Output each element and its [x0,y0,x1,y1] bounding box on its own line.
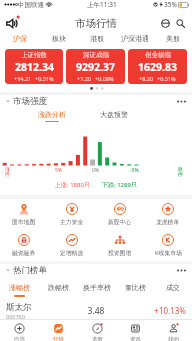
staticText: 涨幅榜 [9,283,30,292]
staticText: 斯太尔 [6,302,32,313]
staticText: 2812.34 [15,60,54,74]
staticText: 9292.37 [76,60,115,74]
staticText: 投资图谱 [108,249,132,256]
button[interactable]: 新股中心 [96,199,144,230]
button[interactable]: 深证成指 [66,49,125,84]
staticText: 跌幅榜 [48,283,69,292]
button[interactable]: 创业板指 [128,49,187,84]
button[interactable]: 换手率榜 [78,277,116,301]
staticText: 000760 [6,313,25,320]
button[interactable]: 美股 [154,33,192,46]
button[interactable]: 投资图谱 [96,230,144,261]
staticText: +0.08% [95,75,114,82]
staticText: 主力资金 [60,218,84,225]
button[interactable]: 成交 [154,277,192,301]
staticText: +0.51% [157,75,176,82]
staticText: 涨跌分析 [38,110,66,119]
staticText: 选股 [92,336,103,341]
button[interactable]: 自选 [0,320,39,341]
staticText: 沪深 [13,34,27,43]
staticText: 港股 [90,34,104,43]
staticText: 市场强度 [13,96,47,107]
staticText: 深证成指 [83,51,109,59]
staticText: 1629.83 [138,60,177,74]
staticText: 跌 停 [178,166,183,178]
staticText: 下跌: 1289只 [102,181,137,189]
button[interactable]: 融资融券 [0,230,48,261]
staticText: 美股 [166,34,180,43]
staticText: +0.51% [35,75,54,82]
staticText: 0% [92,167,100,174]
button[interactable]: 沪深港通 [116,33,154,46]
staticText: 定增精选 [60,249,84,256]
staticText: +10.13% [126,305,186,316]
staticText: 沪深港通 [121,34,149,43]
staticText: 量比榜 [125,283,146,292]
staticText: 3.48 [66,305,126,317]
button[interactable]: 跌幅榜 [39,277,78,301]
staticText: 我的 [168,336,179,341]
button[interactable]: 斯太尔 [0,301,192,320]
button[interactable]: 量比榜 [116,277,154,301]
button[interactable]: 沪深 [0,33,39,46]
button[interactable]: 板块 [39,33,78,46]
button[interactable]: 资讯 [116,320,154,341]
button[interactable]: 更多 [174,264,188,277]
staticText: 龙虎榜单 [156,218,180,225]
staticText: 市场行情 [75,17,117,30]
staticText: 成交 [166,283,180,292]
staticText: 涨 停 [5,166,10,178]
button[interactable]: 定增精选 [48,230,96,261]
staticText: 5% [55,167,63,174]
button[interactable]: 更多 [174,95,188,108]
staticText: 资讯 [130,336,141,341]
staticText: 中国联通 [18,1,44,9]
button[interactable]: 我的 [154,320,192,341]
button[interactable]: 夜间模式 [158,16,173,31]
staticText: 35% [164,0,177,9]
staticText: K线集市场 [155,249,182,257]
staticText: 融资融券 [12,249,36,256]
button[interactable]: K线集市场 [144,230,192,261]
staticText: +7.20 [77,75,92,82]
button[interactable]: 股市地图 [0,199,48,230]
staticText: 新股中心 [108,218,132,225]
button[interactable]: 涨幅榜 [0,277,39,301]
staticText: 行情 [53,336,64,341]
button[interactable]: 大盘预警 [100,110,128,119]
staticText: 上午11:31 [87,0,117,9]
button[interactable]: 行情 [39,320,78,341]
staticText: +14.21 [14,75,32,82]
button[interactable]: 上证指数 [5,49,63,84]
staticText: +8.20 [139,75,154,82]
button[interactable]: 主力资金 [48,199,96,230]
staticText: 热门榜单 [13,265,47,276]
staticText: 上证指数 [21,51,47,59]
staticText: 自选 [14,336,25,341]
staticText: 换手率榜 [83,283,111,292]
staticText: 大盘预警 [100,110,128,119]
button[interactable]: 搜索 [173,16,188,31]
staticText: 创业板指 [145,51,171,59]
button[interactable]: 公告 [4,15,20,31]
staticText: -5% [130,167,139,174]
button[interactable]: 龙虎榜单 [144,199,192,230]
staticText: 上涨: 1880只 [55,181,90,189]
staticText: 板块 [52,34,66,43]
button[interactable]: 涨跌分析 [38,108,66,122]
staticText: 股市地图 [12,218,36,225]
button[interactable]: 港股 [78,33,116,46]
button[interactable]: 选股 [78,320,116,341]
